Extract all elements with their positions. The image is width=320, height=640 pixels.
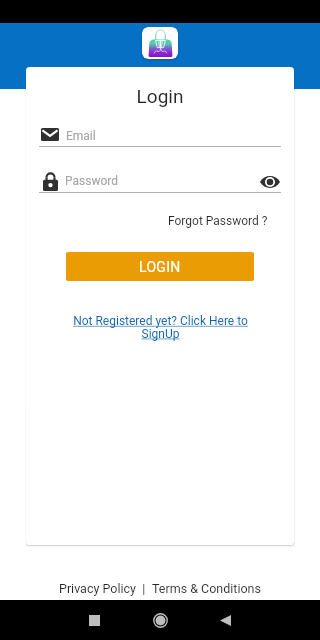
staticText: Login <box>26 85 294 107</box>
button[interactable]: Show password <box>260 175 280 189</box>
button[interactable]: Not Registered yet? Click Here to SignUp <box>26 314 294 346</box>
staticText: Password <box>65 174 119 188</box>
button[interactable]: Forgot Password ? <box>146 212 268 230</box>
button[interactable]: Privacy Policy <box>59 581 136 596</box>
button[interactable]: Recents <box>76 602 112 638</box>
button[interactable]: Back <box>207 602 243 638</box>
staticText: LOGIN <box>139 259 181 275</box>
staticText: Forgot Password ? <box>168 214 268 228</box>
button[interactable]: Password <box>39 170 281 198</box>
staticText: | <box>136 581 152 596</box>
button[interactable]: Email <box>39 124 281 150</box>
staticText: Email <box>66 129 96 143</box>
button[interactable]: App logo <box>142 27 178 59</box>
button[interactable]: Home <box>142 602 178 638</box>
staticText: Not Registered yet? Click Here to SignUp <box>73 314 248 341</box>
button[interactable]: Terms & Conditions <box>152 581 261 596</box>
button[interactable]: LOGIN <box>66 252 254 281</box>
